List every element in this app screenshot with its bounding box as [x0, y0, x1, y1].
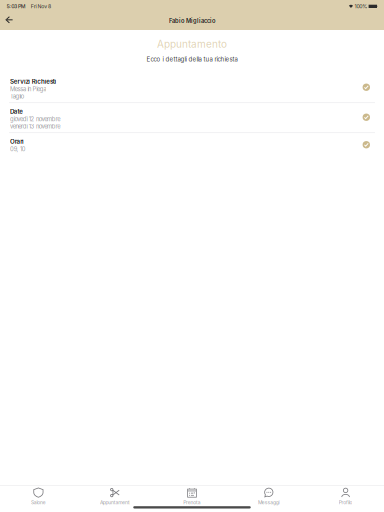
staticText: Orari — [10, 138, 24, 145]
staticText: Date — [10, 108, 23, 115]
staticText: 100% — [354, 3, 367, 9]
staticText: 09, 10 — [10, 145, 26, 153]
staticText: 5:03 PM — [6, 3, 26, 9]
staticText: Migliaccio — [186, 17, 215, 24]
button[interactable]: Messaggi — [230, 486, 307, 505]
staticText: Messa in Piega — [10, 85, 46, 93]
button[interactable]: Appuntamenti — [77, 486, 154, 505]
button[interactable]: Date — [0, 103, 384, 132]
button[interactable]: Salone — [0, 486, 77, 505]
staticText: giovedì 12 novembre — [10, 115, 60, 123]
button[interactable]: Orari — [0, 133, 384, 157]
staticText: Fri Nov 8 — [31, 3, 51, 9]
button[interactable]: Profilo — [307, 486, 384, 505]
staticText: Servizi Richiesti — [10, 78, 56, 85]
staticText: venerdì 13 novembre — [10, 123, 60, 130]
staticText: Messaggi — [258, 499, 280, 505]
staticText: Prenota — [183, 499, 201, 505]
staticText: Ecco i dettagli della tua richiesta — [146, 56, 237, 63]
staticText: Taglio — [10, 93, 25, 100]
button[interactable]: Back — [0, 13, 18, 29]
staticText: Fabio — [169, 17, 184, 24]
staticText: Salone — [31, 499, 46, 505]
staticText: Profilo — [339, 499, 352, 505]
button[interactable]: Servizi Richiesti — [0, 73, 384, 102]
staticText: Appuntamenti — [100, 499, 130, 505]
button[interactable]: Prenota — [154, 486, 230, 505]
staticText: Appuntamento — [157, 38, 227, 50]
